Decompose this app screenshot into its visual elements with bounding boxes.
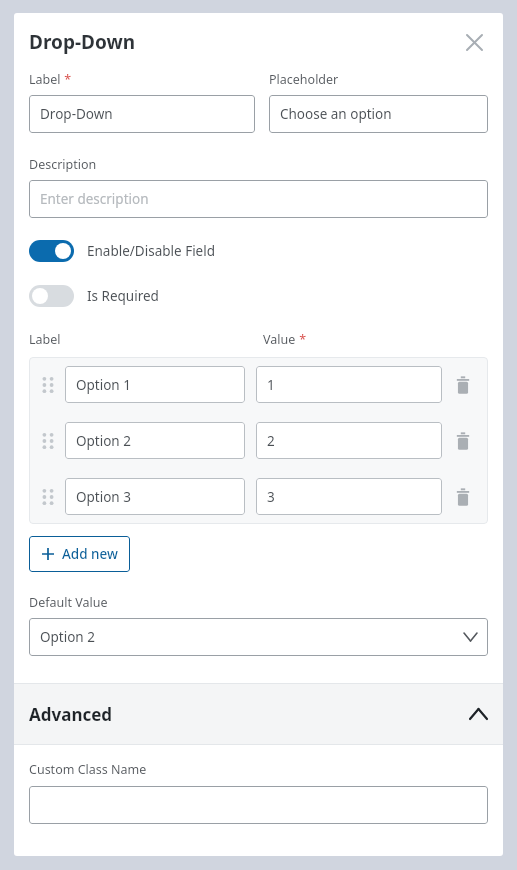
staticText: Option 3 [76, 488, 234, 506]
staticText: Enable/Disable Field [87, 242, 216, 260]
staticText: Custom Class Name [29, 761, 147, 778]
button[interactable]: Close [457, 25, 491, 59]
button[interactable]: Add new [29, 536, 130, 572]
button[interactable]: Enable/Disable Field [29, 240, 216, 262]
button[interactable]: Reorder option [39, 430, 57, 452]
button[interactable]: Is Required [29, 285, 159, 307]
button[interactable]: Advanced [14, 684, 503, 744]
button[interactable]: Option 2 [29, 618, 488, 656]
button[interactable]: Delete option [452, 485, 474, 509]
staticText: Drop-Down [40, 105, 244, 123]
staticText: Default Value [29, 594, 108, 611]
staticText: Option 2 [40, 628, 464, 646]
button[interactable]: Option 1 [65, 366, 245, 403]
staticText: Label [29, 71, 61, 88]
staticText: Is Required [87, 287, 159, 305]
button[interactable]: Delete option [452, 429, 474, 453]
button[interactable]: Reorder option [39, 374, 57, 396]
button[interactable]: Option 3 [65, 478, 245, 515]
staticText: Placeholder [269, 71, 339, 88]
staticText: Advanced [29, 703, 470, 726]
staticText: Label [29, 331, 61, 348]
staticText: Value [263, 331, 296, 348]
button[interactable]: Enter description [29, 180, 488, 218]
button[interactable]: Drop-Down [29, 95, 255, 133]
staticText: * [61, 71, 72, 88]
staticText: 3 [267, 488, 431, 506]
staticText: 2 [267, 432, 431, 450]
button[interactable]: Reorder option [39, 486, 57, 508]
button[interactable]: 2 [256, 422, 442, 459]
button[interactable]: Delete option [452, 373, 474, 397]
button[interactable]: Option 2 [65, 422, 245, 459]
staticText: 1 [267, 376, 431, 394]
staticText: Drop-Down [29, 29, 457, 55]
staticText: * [296, 331, 307, 348]
button[interactable] [29, 786, 488, 824]
staticText: Option 2 [76, 432, 234, 450]
staticText: Option 1 [76, 376, 234, 394]
button[interactable]: Choose an option [269, 95, 488, 133]
staticText: Enter description [40, 190, 477, 208]
button[interactable]: 1 [256, 366, 442, 403]
staticText: Choose an option [280, 105, 477, 123]
staticText: Description [29, 156, 97, 173]
staticText: Add new [62, 545, 118, 563]
button[interactable]: 3 [256, 478, 442, 515]
